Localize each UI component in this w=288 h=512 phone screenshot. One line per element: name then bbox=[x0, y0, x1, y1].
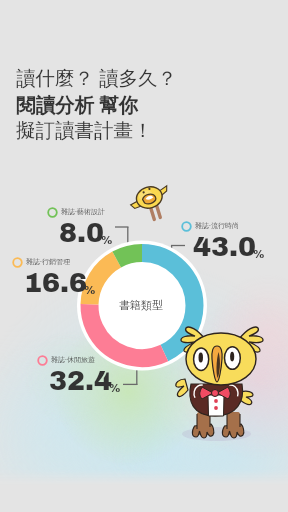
staticText: 雜誌·行銷管理 bbox=[26, 257, 70, 267]
staticText: 讀什麼？ 讀多久？ bbox=[16, 64, 178, 91]
staticText: % bbox=[84, 284, 96, 297]
staticText: 32.4 bbox=[49, 366, 113, 395]
staticText: 書籍類型 bbox=[119, 298, 163, 312]
staticText: 16.6 bbox=[24, 268, 88, 297]
staticText: 閱讀分析 幫你 bbox=[16, 91, 139, 118]
staticText: % bbox=[253, 248, 265, 261]
staticText: 8.0 bbox=[59, 218, 105, 247]
staticText: 雜誌·流行時尚 bbox=[195, 221, 239, 231]
staticText: 雜誌·藝術設計 bbox=[61, 207, 105, 217]
staticText: % bbox=[109, 382, 121, 395]
staticText: 43.0 bbox=[193, 232, 257, 261]
staticText: % bbox=[101, 234, 113, 247]
staticText: 雜誌·休閒旅遊 bbox=[51, 355, 95, 365]
staticText: 擬訂讀書計畫！ bbox=[16, 118, 153, 143]
